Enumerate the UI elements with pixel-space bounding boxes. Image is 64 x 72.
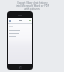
button[interactable] bbox=[9, 26, 33, 27]
button[interactable] bbox=[9, 33, 33, 34]
staticText: Export Viber chat history bbox=[17, 1, 48, 5]
button[interactable]: Home bbox=[19, 66, 22, 69]
staticText: into Microsoft Word or PDF bbox=[16, 4, 49, 8]
button[interactable] bbox=[9, 30, 33, 31]
button[interactable] bbox=[9, 36, 33, 37]
button[interactable]: Back bbox=[8, 18, 32, 23]
staticText: with pictures bbox=[24, 7, 40, 11]
